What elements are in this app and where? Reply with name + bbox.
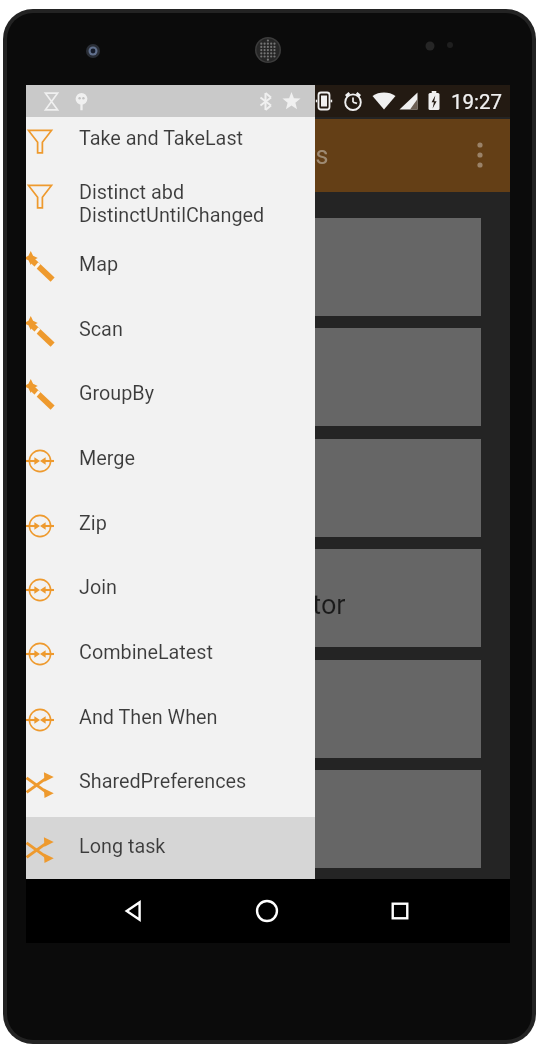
button[interactable]: Long task xyxy=(26,817,315,879)
staticText: Scan xyxy=(79,318,123,341)
button[interactable]: More options xyxy=(466,133,494,177)
button[interactable]: Take and TakeLast xyxy=(26,110,315,175)
staticText: Merge xyxy=(79,447,135,470)
button[interactable]: SharedPreferences xyxy=(26,753,315,817)
button[interactable]: CombineLatest xyxy=(26,624,315,689)
button[interactable]: Join xyxy=(26,559,315,624)
button[interactable]: Merge xyxy=(26,430,315,495)
staticText: RxOperators xyxy=(191,141,329,170)
button[interactable]: RxOperators xyxy=(26,119,510,192)
staticText: GroupBy xyxy=(79,382,155,405)
staticText: And Then When xyxy=(79,706,218,729)
button[interactable]: Zip xyxy=(26,495,315,560)
staticText: DistinctUntilChanged xyxy=(79,204,265,227)
button[interactable] xyxy=(36,328,481,426)
button[interactable]: Operator xyxy=(36,549,481,647)
button[interactable] xyxy=(36,660,481,758)
staticText: Join xyxy=(79,576,117,599)
staticText: Long task xyxy=(79,835,166,858)
button[interactable] xyxy=(36,439,481,537)
staticText: Map xyxy=(79,253,119,276)
staticText: Operator xyxy=(241,589,346,621)
staticText: Take and TakeLast xyxy=(79,127,244,150)
button[interactable]: Home xyxy=(243,879,291,943)
button[interactable]: Recents xyxy=(376,879,424,943)
staticText: CombineLatest xyxy=(79,641,213,664)
button[interactable]: And Then When xyxy=(26,689,315,754)
button[interactable]: Map xyxy=(26,236,315,301)
staticText: Zip xyxy=(79,512,107,535)
button[interactable]: Back xyxy=(110,879,158,943)
staticText: Distinct abd xyxy=(79,181,185,204)
staticText: SharedPreferences xyxy=(79,770,247,793)
button[interactable] xyxy=(36,218,481,316)
button[interactable]: Scan xyxy=(26,301,315,366)
button[interactable]: GroupBy xyxy=(26,365,315,430)
staticText: 19:27 xyxy=(451,90,503,114)
button[interactable] xyxy=(36,770,481,868)
button[interactable]: Distinct abd xyxy=(26,174,315,236)
